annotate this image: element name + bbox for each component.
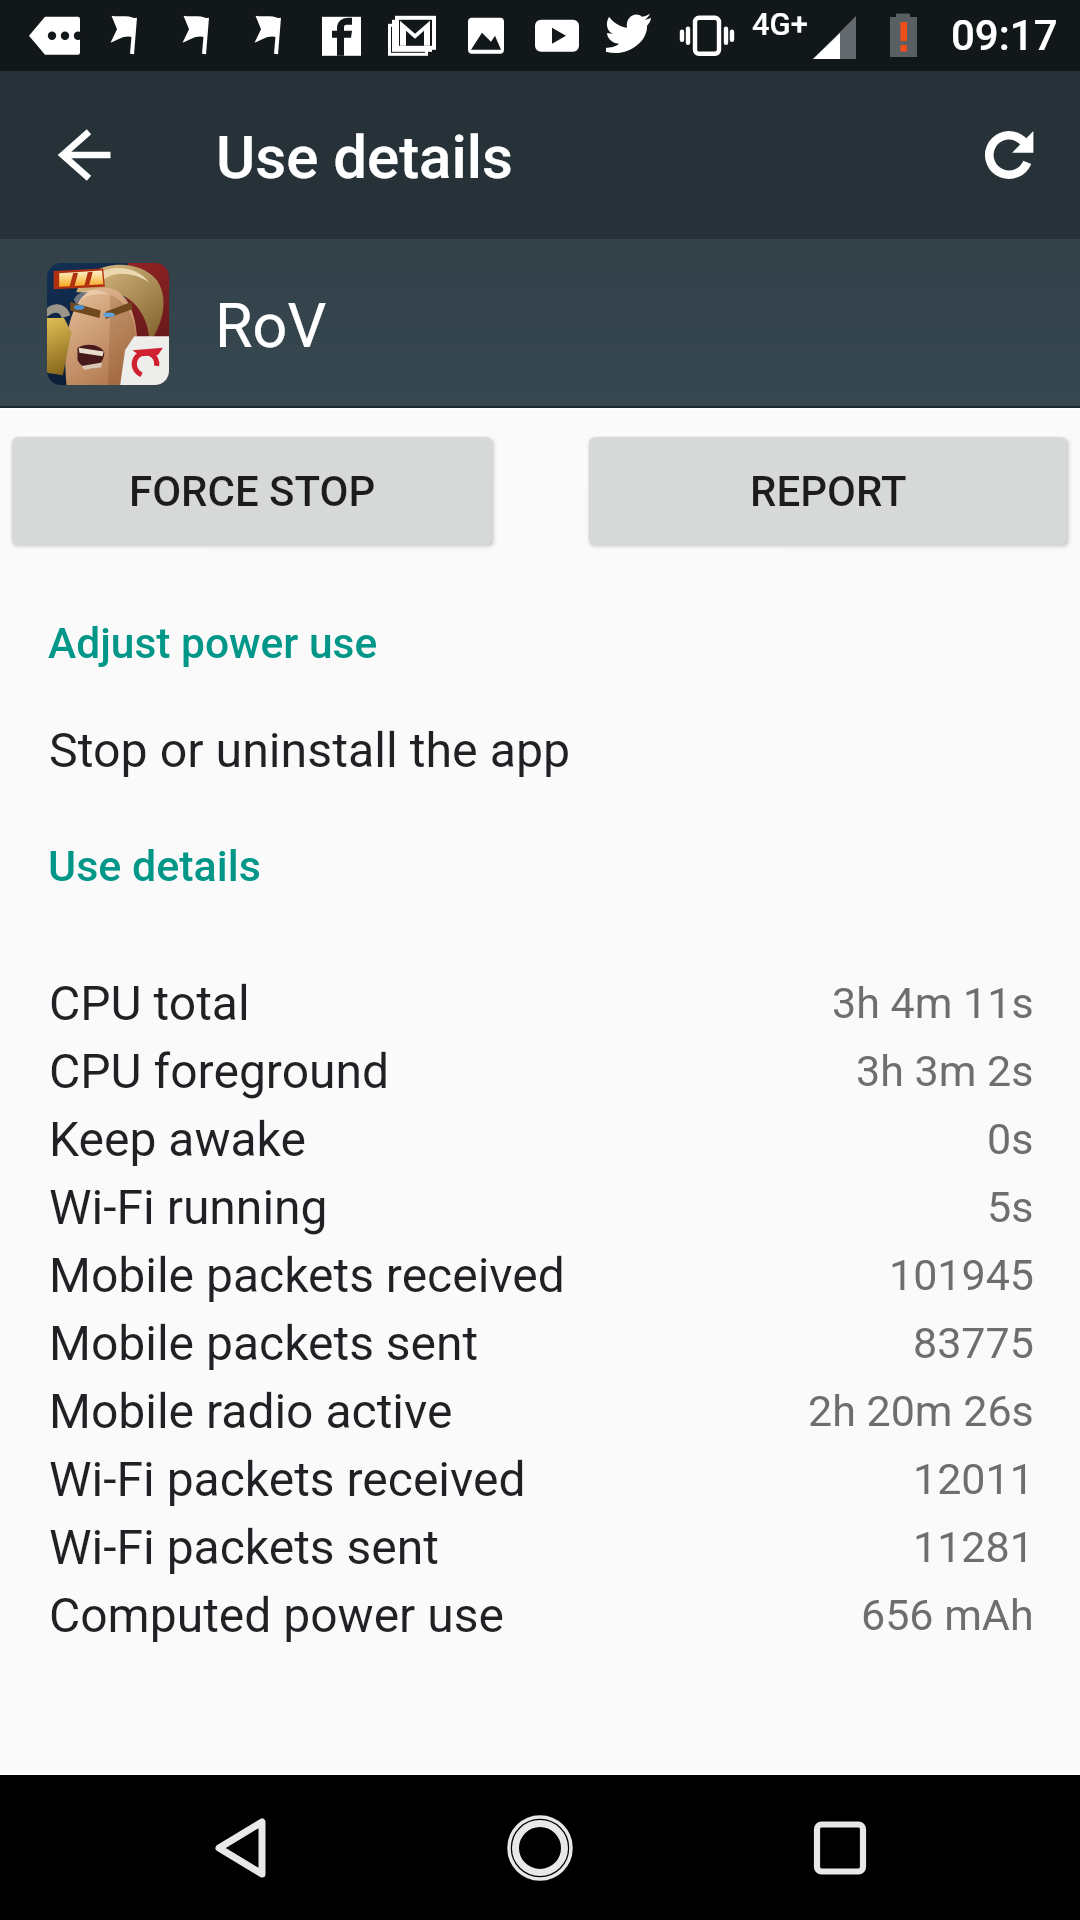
button[interactable]: CPU foreground	[0, 1037, 1080, 1105]
staticText: 3h 4m 11s	[832, 978, 1034, 1028]
button[interactable]: Mobile radio active	[0, 1377, 1080, 1445]
staticText: Mobile radio active	[49, 1383, 453, 1439]
staticText: 101945	[889, 1250, 1034, 1300]
staticText: 5s	[987, 1182, 1034, 1232]
staticText: Mobile packets sent	[49, 1315, 479, 1371]
button[interactable]: Home	[480, 1788, 600, 1908]
button[interactable]: Keep awake	[0, 1105, 1080, 1173]
button[interactable]: Wi-Fi packets sent	[0, 1513, 1080, 1581]
button[interactable]: Navigate up	[24, 95, 144, 215]
staticText: Wi-Fi packets received	[49, 1451, 526, 1507]
button[interactable]: CPU total	[0, 969, 1080, 1037]
staticText: Keep awake	[49, 1111, 306, 1167]
button[interactable]: Wi-Fi packets received	[0, 1445, 1080, 1513]
staticText: Wi-Fi running	[49, 1179, 328, 1235]
staticText: 09:17	[951, 11, 1058, 60]
staticText: CPU total	[49, 975, 250, 1031]
staticText: Use details	[216, 122, 513, 192]
button[interactable]: Back	[181, 1788, 301, 1908]
staticText: 83775	[913, 1318, 1034, 1368]
staticText: 656 mAh	[861, 1590, 1034, 1640]
button[interactable]: Mobile packets received	[0, 1241, 1080, 1309]
staticText: FORCE STOP	[129, 467, 376, 516]
staticText: Stop or uninstall the app	[49, 722, 571, 779]
staticText: Use details	[48, 841, 261, 891]
button[interactable]: Refresh	[949, 95, 1069, 215]
staticText: Wi-Fi packets sent	[49, 1519, 439, 1575]
button[interactable]: Stop or uninstall the app	[0, 715, 1080, 785]
staticText: 4G+	[752, 6, 808, 42]
staticText: 3h 3m 2s	[856, 1046, 1034, 1096]
staticText: 2h 20m 26s	[808, 1386, 1034, 1436]
staticText: Mobile packets received	[49, 1247, 565, 1303]
staticText: 12011	[913, 1454, 1034, 1504]
button[interactable]: FORCE STOP	[12, 437, 492, 545]
staticText: RoV	[215, 290, 327, 361]
button[interactable]: REPORT	[589, 437, 1067, 545]
button[interactable]: Recent apps	[780, 1788, 900, 1908]
button[interactable]: Computed power use	[0, 1581, 1080, 1649]
button[interactable]: Wi-Fi running	[0, 1173, 1080, 1241]
staticText: Computed power use	[49, 1587, 504, 1643]
staticText: 11281	[913, 1522, 1034, 1572]
staticText: Adjust power use	[48, 619, 378, 669]
staticText: CPU foreground	[49, 1043, 390, 1099]
staticText: REPORT	[750, 467, 907, 516]
staticText: 0s	[987, 1114, 1034, 1164]
button[interactable]: Mobile packets sent	[0, 1309, 1080, 1377]
